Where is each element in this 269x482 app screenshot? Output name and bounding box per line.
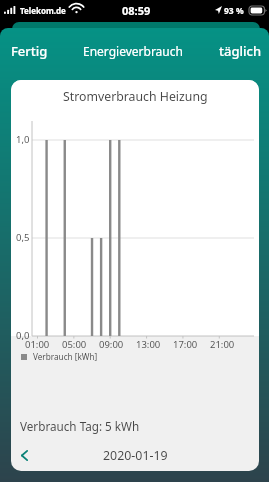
staticText: 08:59 bbox=[122, 3, 151, 18]
button[interactable]: Vorheriger Tag bbox=[14, 445, 35, 466]
button[interactable]: Fertig bbox=[11, 38, 48, 64]
staticText: Telekom.de bbox=[20, 5, 66, 16]
staticText: Verbrauch Tag: 5 kWh bbox=[20, 418, 140, 434]
staticText: 05:00 bbox=[62, 338, 87, 351]
staticText: 17:00 bbox=[173, 338, 198, 351]
staticText: Fertig bbox=[11, 42, 48, 60]
staticText: täglich bbox=[219, 42, 262, 60]
staticText: 93 % bbox=[224, 5, 244, 17]
staticText: 2020-01-19 bbox=[103, 447, 168, 464]
button[interactable]: täglich bbox=[219, 38, 262, 64]
staticText: Stromverbrauch Heizung bbox=[63, 88, 208, 105]
staticText: Energieverbrauch bbox=[83, 43, 183, 59]
staticText: 01:00 bbox=[25, 338, 50, 351]
staticText: Verbrauch [kWh] bbox=[33, 351, 98, 362]
staticText: 0,0 bbox=[16, 329, 30, 342]
staticText: 1,0 bbox=[16, 133, 30, 146]
staticText: 13:00 bbox=[136, 338, 161, 351]
staticText: 0,5 bbox=[16, 231, 30, 244]
staticText: 09:00 bbox=[99, 338, 124, 351]
staticText: 21:00 bbox=[210, 338, 235, 351]
